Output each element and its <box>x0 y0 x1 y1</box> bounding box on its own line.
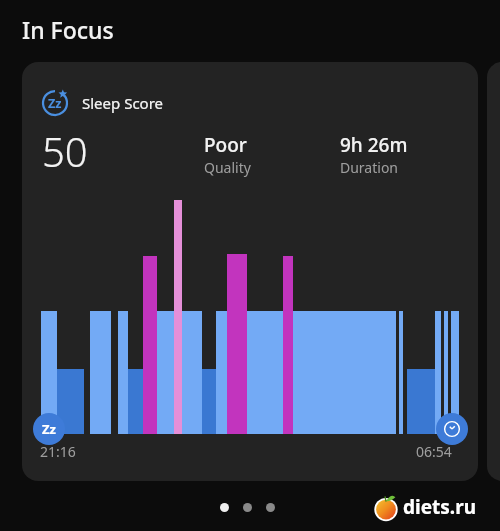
staticText: Zz <box>48 95 62 112</box>
button[interactable]: Zz <box>22 62 478 481</box>
staticText: 9h 26m <box>340 132 408 158</box>
staticText: Poor <box>204 132 247 158</box>
staticText: In Focus <box>22 14 114 45</box>
staticText: Sleep Score <box>82 93 164 113</box>
staticText: 21:16 <box>40 442 76 461</box>
staticText: Duration <box>340 158 399 177</box>
staticText: 50 <box>42 124 88 178</box>
staticText: 06:54 <box>416 442 452 461</box>
button[interactable]: Wake time <box>436 413 468 445</box>
button[interactable]: Sleep start <box>33 413 65 445</box>
staticText: Quality <box>204 158 251 177</box>
staticText: Zz <box>42 420 56 438</box>
staticText: diets.ru <box>403 494 476 520</box>
